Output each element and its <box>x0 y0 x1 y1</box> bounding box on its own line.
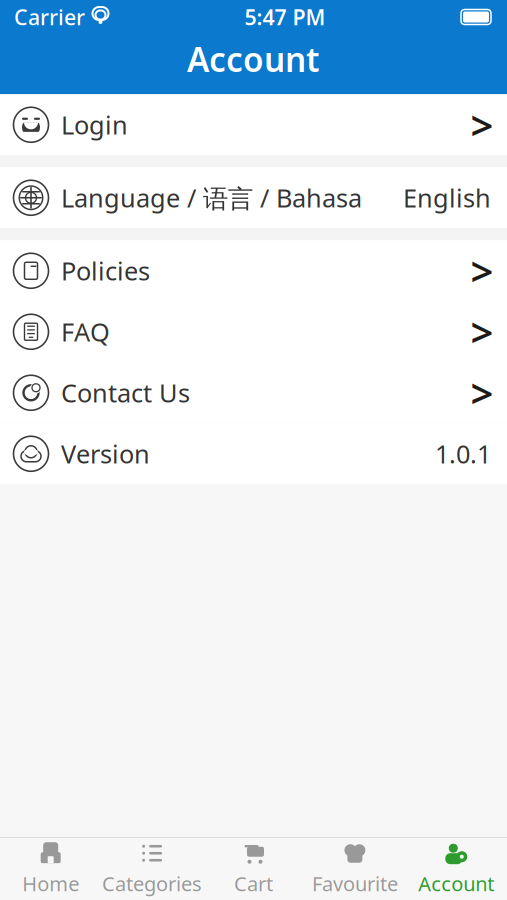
button[interactable]: Login <box>0 94 507 155</box>
staticText: > <box>470 244 493 297</box>
staticText: FAQ <box>61 315 110 348</box>
staticText: Categories <box>102 870 202 897</box>
staticText: Home <box>22 870 79 897</box>
staticText: > <box>470 98 493 151</box>
staticText: Account <box>187 37 320 81</box>
staticText: 5:47 PM <box>244 3 325 31</box>
button[interactable]: Favourite <box>304 838 406 900</box>
button[interactable]: Language / 语言 / Bahasa <box>0 167 507 228</box>
staticText: Account <box>418 870 494 897</box>
staticText: Favourite <box>312 870 398 897</box>
staticText: Login <box>61 108 128 141</box>
button[interactable]: Categories <box>101 838 203 900</box>
staticText: Language / 语言 / Bahasa <box>61 181 362 215</box>
staticText: Version <box>61 437 150 470</box>
button[interactable]: Account <box>406 838 507 900</box>
button[interactable]: Cart <box>203 838 304 900</box>
button[interactable]: Contact Us <box>0 362 507 423</box>
staticText: Policies <box>61 254 150 287</box>
staticText: Carrier <box>14 3 85 31</box>
staticText: English <box>403 181 491 214</box>
button[interactable]: Home <box>0 838 101 900</box>
staticText: 1.0.1 <box>435 437 491 470</box>
button[interactable]: Policies <box>0 240 507 301</box>
button[interactable]: FAQ <box>0 301 507 362</box>
staticText: > <box>470 366 493 419</box>
button[interactable]: Version <box>0 423 507 484</box>
staticText: > <box>470 305 493 358</box>
staticText: Cart <box>234 870 273 897</box>
staticText: Contact Us <box>61 376 190 409</box>
